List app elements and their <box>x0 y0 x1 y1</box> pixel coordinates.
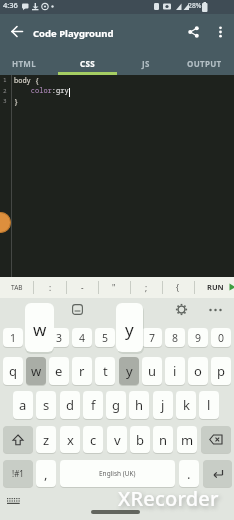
button[interactable] <box>216 26 225 38</box>
button[interactable]: f <box>83 391 103 419</box>
staticText: i <box>173 362 177 380</box>
button[interactable]: q <box>3 357 23 385</box>
button[interactable]: " <box>102 278 126 296</box>
staticText: color:gry <box>14 86 69 96</box>
button[interactable]: g <box>106 391 126 419</box>
staticText: r <box>79 362 85 380</box>
button[interactable]: o <box>188 357 208 385</box>
button[interactable]: l <box>199 391 219 419</box>
button[interactable]: b <box>130 426 150 453</box>
staticText: u <box>148 362 157 380</box>
button[interactable]: n <box>153 426 173 453</box>
staticText: h <box>135 396 144 414</box>
button[interactable]: s <box>36 391 56 419</box>
button[interactable]: 9 <box>188 328 208 347</box>
button[interactable]: r <box>72 357 92 385</box>
staticText: 2 <box>3 87 7 95</box>
button[interactable]: English (UK) <box>60 460 175 487</box>
staticText: , <box>44 465 48 483</box>
button[interactable]: d <box>60 391 80 419</box>
button[interactable]: OUTPUT <box>175 52 234 75</box>
button[interactable] <box>72 304 83 316</box>
button[interactable]: . <box>179 460 199 487</box>
staticText: p <box>217 362 225 380</box>
button[interactable]: w <box>26 357 46 385</box>
staticText: 1 <box>10 331 17 345</box>
button[interactable]: e <box>49 357 69 385</box>
button[interactable]: v <box>107 426 127 453</box>
staticText: . <box>187 465 191 483</box>
staticText: y <box>126 362 133 380</box>
button[interactable]: u <box>142 357 162 385</box>
button[interactable] <box>175 303 188 316</box>
button[interactable]: ; <box>134 278 158 296</box>
staticText: : <box>49 282 52 293</box>
button[interactable]: j <box>153 391 173 419</box>
button[interactable]: 2 <box>26 328 46 347</box>
button[interactable]: 8 <box>165 328 185 347</box>
button[interactable] <box>3 426 33 453</box>
button[interactable]: c <box>83 426 103 453</box>
staticText: d <box>66 396 74 414</box>
staticText: { <box>176 282 180 293</box>
button[interactable]: JS <box>117 52 175 75</box>
staticText: 8 <box>172 331 179 345</box>
button[interactable]: : <box>38 278 62 296</box>
staticText: 7 <box>149 331 156 345</box>
button[interactable] <box>188 26 199 38</box>
staticText: " <box>112 282 116 293</box>
staticText: w <box>31 362 42 380</box>
button[interactable]: z <box>36 426 56 453</box>
button[interactable] <box>6 497 21 507</box>
staticText: TAB <box>11 283 23 292</box>
button[interactable] <box>208 304 224 316</box>
button[interactable]: CSS <box>58 52 117 75</box>
button[interactable]: - <box>70 278 94 296</box>
button[interactable]: t <box>95 357 115 385</box>
button[interactable]: 1 <box>3 328 23 347</box>
staticText: 5 <box>102 331 109 345</box>
staticText: ; <box>145 282 148 293</box>
button[interactable] <box>203 460 232 487</box>
staticText: Code Playground <box>33 27 114 40</box>
button[interactable]: k <box>176 391 196 419</box>
button[interactable]: h <box>129 391 149 419</box>
staticText: l <box>207 396 211 414</box>
button[interactable] <box>11 26 23 38</box>
button[interactable]: y <box>119 357 139 385</box>
staticText: 3 <box>56 331 63 345</box>
button[interactable]: 0 <box>211 328 231 347</box>
staticText: n <box>159 431 168 449</box>
button[interactable]: TAB <box>5 278 29 296</box>
staticText: v <box>114 431 121 449</box>
button[interactable]: 7 <box>142 328 162 347</box>
button[interactable]: x <box>60 426 80 453</box>
staticText: HTML <box>12 58 36 69</box>
staticText: body { <box>14 76 40 86</box>
staticText: CSS <box>80 58 95 69</box>
button[interactable]: a <box>13 391 33 419</box>
staticText: o <box>194 362 202 380</box>
button[interactable]: 4 <box>72 328 92 347</box>
staticText: z <box>43 431 50 449</box>
button[interactable]: HTML <box>0 52 47 75</box>
staticText: - <box>81 282 84 293</box>
button[interactable]: i <box>165 357 185 385</box>
button[interactable]: RUN <box>196 278 234 296</box>
staticText: 4:36 <box>3 0 18 10</box>
button[interactable]: !#1 <box>3 460 33 487</box>
button[interactable] <box>0 212 11 233</box>
button[interactable]: , <box>36 460 56 487</box>
staticText: English (UK) <box>99 469 136 478</box>
button[interactable]: 6 <box>119 328 139 347</box>
button[interactable]: 3 <box>49 328 69 347</box>
button[interactable]: { <box>166 278 190 296</box>
button[interactable]: 5 <box>95 328 115 347</box>
staticText: q <box>9 362 17 380</box>
button[interactable]: p <box>211 357 231 385</box>
staticText: } <box>14 97 19 107</box>
button[interactable] <box>201 426 231 453</box>
button[interactable]: m <box>177 426 197 453</box>
staticText: 2 <box>33 331 40 345</box>
staticText: f <box>91 396 96 414</box>
